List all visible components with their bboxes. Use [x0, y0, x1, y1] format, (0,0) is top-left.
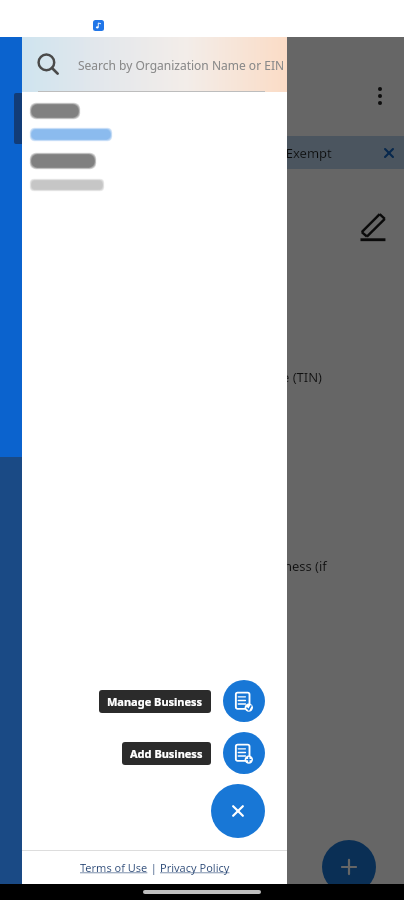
staticText: Terms of Use [80, 860, 148, 875]
button[interactable]: Add Business [223, 732, 265, 774]
staticText: | [148, 860, 160, 875]
button[interactable]: Privacy Policy [160, 860, 230, 875]
staticText: also known as the (TIN) [180, 368, 322, 386]
button[interactable]: Tax Exempt [250, 136, 404, 169]
staticText: Address of business (if [190, 557, 327, 575]
button[interactable]: Edit [356, 209, 388, 241]
staticText: Manage Business [107, 694, 203, 709]
button[interactable]: Manage Business [223, 680, 265, 722]
staticText: Privacy Policy [160, 860, 230, 875]
button[interactable] [32, 103, 287, 191]
button[interactable]: Terms of Use [80, 860, 148, 875]
button[interactable]: Add [322, 840, 376, 894]
button[interactable]: Search by Organization Name or EIN [22, 37, 287, 92]
button[interactable]: Manage Business [99, 690, 211, 713]
staticText: Tax Exempt [262, 144, 332, 162]
staticText: Add Business [130, 746, 203, 761]
button[interactable]: More options [374, 83, 386, 109]
button[interactable]: Close menu [211, 784, 265, 838]
staticText: Search by Organization Name or EIN [78, 57, 285, 73]
button[interactable]: Add Business [122, 742, 211, 765]
